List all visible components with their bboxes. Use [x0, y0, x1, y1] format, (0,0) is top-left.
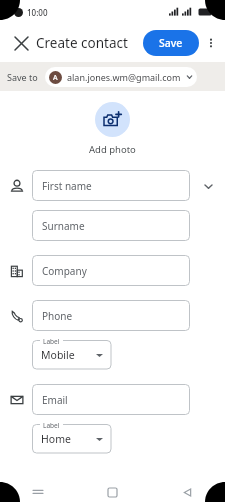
button[interactable]: First name — [32, 170, 190, 201]
staticText: Add photo — [89, 143, 136, 156]
button[interactable]: Close — [8, 30, 34, 56]
button[interactable]: Back — [150, 482, 225, 502]
button[interactable]: Recents — [0, 482, 75, 502]
button[interactable]: Company — [32, 255, 190, 286]
button[interactable]: Save — [143, 30, 199, 56]
button[interactable]: Surname — [32, 210, 190, 241]
staticText: Phone — [42, 309, 73, 323]
staticText: First name — [42, 179, 92, 193]
button[interactable]: More options — [200, 32, 222, 54]
staticText: Email — [42, 393, 68, 407]
staticText: Save — [159, 36, 183, 50]
staticText: Label — [43, 337, 60, 346]
button[interactable]: A — [45, 67, 197, 87]
staticText: Surname — [42, 219, 85, 233]
button[interactable]: Email — [32, 384, 190, 415]
staticText: A — [53, 73, 58, 83]
staticText: Label — [43, 421, 60, 430]
button[interactable]: Home — [75, 482, 150, 502]
button[interactable]: Phone — [32, 300, 190, 331]
staticText: Save to — [7, 71, 38, 83]
button[interactable]: Home — [32, 424, 112, 454]
staticText: alan.jones.wm@gmail.com — [67, 71, 181, 83]
staticText: Create contact — [36, 34, 128, 52]
staticText: 10:00 — [27, 7, 48, 18]
staticText: Mobile — [41, 348, 75, 362]
button[interactable]: Mobile — [32, 340, 112, 370]
button[interactable]: Expand name fields — [199, 177, 217, 195]
staticText: Company — [42, 264, 87, 278]
staticText: Home — [41, 432, 71, 446]
button[interactable]: Add photo — [0, 102, 225, 156]
